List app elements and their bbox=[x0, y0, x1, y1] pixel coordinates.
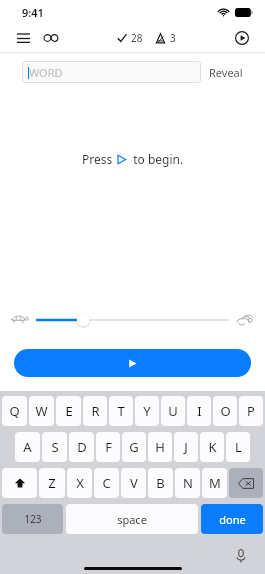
staticText: U bbox=[168, 402, 178, 420]
button[interactable]: done bbox=[201, 504, 263, 534]
staticText: I bbox=[197, 402, 202, 420]
staticText: M bbox=[209, 474, 221, 492]
button[interactable]: Reveal bbox=[209, 65, 243, 80]
button[interactable] bbox=[36, 307, 229, 333]
staticText: B bbox=[156, 474, 165, 492]
button[interactable]: X bbox=[67, 468, 92, 498]
button[interactable]: L bbox=[226, 432, 250, 462]
button[interactable]: WORD bbox=[22, 61, 201, 83]
button[interactable]: D bbox=[69, 432, 94, 462]
button[interactable]: F bbox=[96, 432, 120, 462]
button[interactable]: Z bbox=[39, 468, 65, 498]
button[interactable]: Backspace bbox=[229, 468, 263, 498]
staticText: S bbox=[51, 438, 59, 456]
button[interactable]: K bbox=[200, 432, 224, 462]
button[interactable]: Glasses bbox=[40, 27, 62, 49]
staticText: P bbox=[247, 402, 255, 420]
button[interactable]: V bbox=[121, 468, 146, 498]
staticText: T bbox=[117, 402, 125, 420]
button[interactable]: Shift bbox=[2, 468, 37, 498]
staticText: to begin. bbox=[127, 151, 184, 167]
staticText: J bbox=[184, 438, 188, 456]
staticText: 3 bbox=[170, 31, 176, 45]
button[interactable]: Play bbox=[14, 349, 251, 377]
button[interactable]: Q bbox=[2, 396, 27, 426]
button[interactable]: G bbox=[122, 432, 146, 462]
button[interactable]: S bbox=[42, 432, 67, 462]
button[interactable]: W bbox=[29, 396, 54, 426]
staticText: A bbox=[23, 438, 32, 456]
button[interactable]: A bbox=[15, 432, 40, 462]
button[interactable]: U bbox=[161, 396, 185, 426]
button[interactable]: 28 bbox=[117, 31, 143, 45]
staticText: Q bbox=[9, 402, 20, 420]
staticText: W bbox=[35, 402, 48, 420]
button[interactable]: 123 bbox=[2, 504, 63, 534]
staticText: R bbox=[91, 402, 100, 420]
staticText: F bbox=[105, 438, 112, 456]
staticText: Z bbox=[48, 474, 56, 492]
button[interactable]: R bbox=[83, 396, 107, 426]
staticText: WORD bbox=[29, 65, 63, 80]
staticText: H bbox=[155, 438, 165, 456]
button[interactable]: B bbox=[148, 468, 173, 498]
staticText: E bbox=[65, 402, 73, 420]
button[interactable]: Playback settings bbox=[231, 27, 253, 49]
staticText: 123 bbox=[24, 512, 42, 526]
staticText: D bbox=[77, 438, 87, 456]
button[interactable]: J bbox=[174, 432, 198, 462]
button[interactable]: H bbox=[148, 432, 172, 462]
staticText: X bbox=[76, 474, 84, 492]
staticText: V bbox=[130, 474, 138, 492]
staticText: Press bbox=[82, 151, 116, 167]
staticText: C bbox=[102, 474, 111, 492]
button[interactable]: T bbox=[109, 396, 133, 426]
button[interactable]: I bbox=[187, 396, 211, 426]
button[interactable]: M bbox=[202, 468, 227, 498]
staticText: 9:41 bbox=[22, 5, 44, 20]
staticText: L bbox=[235, 438, 242, 456]
button[interactable]: N bbox=[175, 468, 200, 498]
button[interactable]: Dictate bbox=[231, 546, 251, 566]
staticText: done bbox=[219, 512, 246, 527]
staticText: Reveal bbox=[209, 65, 243, 80]
staticText: Y bbox=[143, 402, 151, 420]
button[interactable]: P bbox=[239, 396, 263, 426]
button[interactable]: Y bbox=[135, 396, 159, 426]
staticText: G bbox=[129, 438, 139, 456]
button[interactable]: space bbox=[66, 504, 198, 534]
staticText: N bbox=[183, 474, 193, 492]
staticText: 28 bbox=[131, 31, 143, 45]
staticText: space bbox=[117, 512, 147, 527]
staticText: O bbox=[220, 402, 231, 420]
button[interactable]: 3 bbox=[155, 31, 176, 45]
button[interactable]: Menu bbox=[12, 27, 34, 49]
staticText: K bbox=[208, 438, 217, 456]
button[interactable]: E bbox=[56, 396, 81, 426]
button[interactable]: C bbox=[94, 468, 119, 498]
button[interactable]: O bbox=[213, 396, 237, 426]
